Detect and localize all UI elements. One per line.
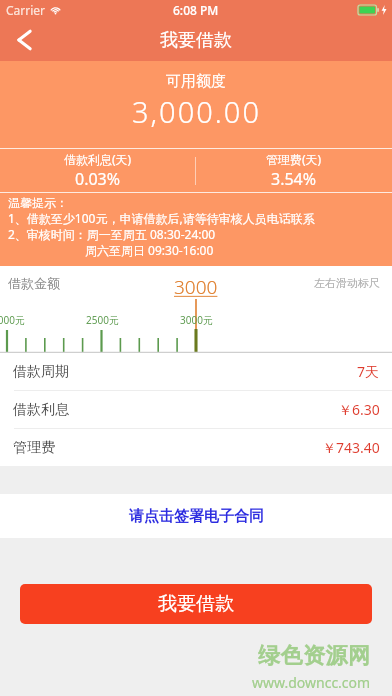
staticText: ￥743.40 <box>322 438 380 457</box>
button[interactable]: Back <box>0 20 50 61</box>
button[interactable]: 管理费 <box>0 429 392 466</box>
staticText: 0.03% <box>75 168 121 190</box>
staticText: 可用额度 <box>166 72 226 91</box>
staticText: 3.54% <box>271 168 317 190</box>
staticText: 3000 <box>174 274 218 300</box>
staticText: 左右滑动标尺 <box>314 276 380 290</box>
staticText: 周六至周日 09:30-16:00 <box>85 242 214 258</box>
button[interactable]: 借款周期 <box>0 353 392 390</box>
staticText: 借款利息(天) <box>64 151 132 167</box>
staticText: 2、审核时间：周一至周五 08:30-24:00 <box>8 226 216 242</box>
staticText: 2500元 <box>86 313 119 327</box>
staticText: 借款金额 <box>8 275 60 291</box>
staticText: 1、借款至少100元，申请借款后,请等待审核人员电话联系 <box>8 210 315 226</box>
staticText: 3000元 <box>180 313 213 327</box>
staticText: 借款利息 <box>13 401 69 419</box>
staticText: 管理费(天) <box>266 151 322 167</box>
staticText: 绿色资源网 <box>258 642 371 670</box>
staticText: 温馨提示： <box>8 195 68 210</box>
staticText: 我要借款 <box>158 592 234 616</box>
staticText: 请点击签署电子合同 <box>129 507 264 526</box>
button[interactable]: 请点击签署电子合同 <box>0 494 392 538</box>
staticText: 管理费 <box>13 439 55 457</box>
staticText: 借款周期 <box>13 363 69 381</box>
staticText: 我要借款 <box>160 29 232 52</box>
staticText: 6:08 PM <box>173 2 219 18</box>
staticText: www.downcc.com <box>252 673 371 692</box>
staticText: 3,000.00 <box>132 92 261 131</box>
button[interactable]: 我要借款 <box>20 584 372 624</box>
staticText: ￥6.30 <box>338 400 380 419</box>
staticText: 2000元 <box>0 313 25 327</box>
button[interactable]: 借款利息 <box>0 391 392 428</box>
staticText: 7天 <box>357 362 380 381</box>
staticText: Carrier <box>6 2 46 18</box>
